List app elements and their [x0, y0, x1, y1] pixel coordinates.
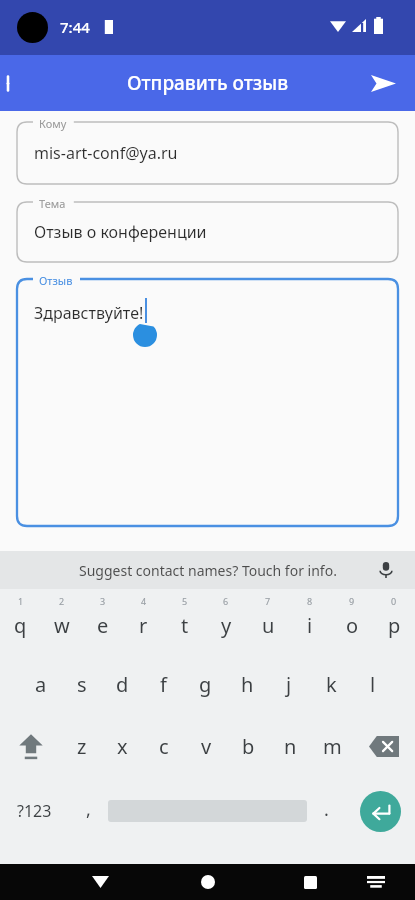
staticText: Тема [39, 196, 66, 211]
button[interactable]: Back [75, 864, 125, 900]
staticText: o [346, 612, 359, 639]
staticText: c [159, 733, 169, 760]
staticText: n [284, 733, 297, 760]
button[interactable]: Voice input [371, 555, 401, 585]
staticText: d [116, 671, 129, 698]
staticText: j [286, 671, 292, 698]
staticText: z [77, 733, 87, 760]
button[interactable]: 6 [205, 589, 247, 653]
button[interactable]: Suggest contact names? Touch for info. [0, 551, 415, 589]
staticText: 7:44 [60, 17, 90, 37]
staticText: Здравствуйте! [34, 302, 144, 324]
staticText: 9 [349, 595, 355, 607]
staticText: s [77, 671, 87, 698]
button[interactable]: Кому [17, 122, 398, 184]
button[interactable]: n [269, 715, 311, 777]
button[interactable]: Отзыв [17, 279, 398, 526]
button[interactable]: s [61, 653, 102, 715]
staticText: u [262, 612, 275, 639]
button[interactable]: Home [183, 864, 233, 900]
button[interactable]: , [69, 777, 108, 845]
staticText: Suggest contact names? Touch for info. [79, 561, 337, 580]
button[interactable]: 2 [41, 589, 82, 653]
button[interactable]: j [268, 653, 310, 715]
button[interactable]: a [20, 653, 61, 715]
staticText: 5 [182, 595, 188, 607]
staticText: 6 [223, 595, 229, 607]
staticText: f [160, 671, 167, 698]
button[interactable]: h [226, 653, 268, 715]
button[interactable]: Send [359, 59, 407, 107]
staticText: e [97, 612, 109, 639]
staticText: g [199, 671, 212, 698]
button[interactable]: Enter [346, 777, 415, 845]
staticText: ?123 [17, 800, 52, 822]
button[interactable]: m [311, 715, 353, 777]
staticText: 8 [307, 595, 313, 607]
button[interactable]: 4 [123, 589, 164, 653]
staticText: mis-art-conf@ya.ru [34, 142, 178, 164]
staticText: Отзыв о конференции [34, 221, 207, 243]
staticText: 0 [391, 595, 397, 607]
staticText: , [86, 797, 91, 822]
button[interactable]: 5 [164, 589, 205, 653]
staticText: m [323, 733, 342, 760]
button[interactable]: Recents [285, 864, 335, 900]
button[interactable]: z [61, 715, 102, 777]
staticText: w [54, 612, 70, 639]
staticText: l [370, 671, 376, 698]
staticText: p [388, 612, 401, 639]
button[interactable]: Shift [0, 715, 61, 777]
button[interactable]: Switch keyboard [354, 864, 398, 900]
button[interactable]: 0 [373, 589, 415, 653]
staticText: Отзыв [39, 273, 73, 288]
button[interactable]: g [184, 653, 226, 715]
staticText: i [307, 612, 313, 639]
staticText: 3 [100, 595, 106, 607]
staticText: . [324, 797, 329, 822]
button[interactable]: b [227, 715, 269, 777]
staticText: r [139, 612, 148, 639]
button[interactable]: 7 [247, 589, 289, 653]
button[interactable]: d [102, 653, 143, 715]
button[interactable]: . [307, 777, 346, 845]
button[interactable] [108, 777, 307, 845]
button[interactable]: f [143, 653, 184, 715]
button[interactable]: 1 [0, 589, 41, 653]
button[interactable]: l [352, 653, 394, 715]
staticText: 1 [18, 595, 24, 607]
button[interactable]: ?123 [0, 777, 69, 845]
staticText: k [326, 671, 337, 698]
staticText: q [14, 612, 27, 639]
button[interactable]: Тема [17, 202, 398, 262]
button[interactable]: x [102, 715, 143, 777]
staticText: h [241, 671, 254, 698]
staticText: y [221, 612, 232, 639]
staticText: 4 [141, 595, 147, 607]
staticText: v [201, 733, 212, 760]
button[interactable]: v [185, 715, 227, 777]
staticText: Отправить отзыв [127, 70, 289, 96]
staticText: 7 [265, 595, 271, 607]
button[interactable]: k [310, 653, 352, 715]
staticText: t [181, 612, 189, 639]
button[interactable]: Backspace [353, 715, 415, 777]
button[interactable]: 3 [82, 589, 123, 653]
staticText: 2 [59, 595, 65, 607]
button[interactable]: 8 [289, 589, 331, 653]
staticText: b [242, 733, 255, 760]
staticText: Кому [39, 116, 67, 131]
staticText: x [117, 733, 128, 760]
button[interactable]: c [143, 715, 185, 777]
button[interactable]: 9 [331, 589, 373, 653]
staticText: a [35, 671, 47, 698]
